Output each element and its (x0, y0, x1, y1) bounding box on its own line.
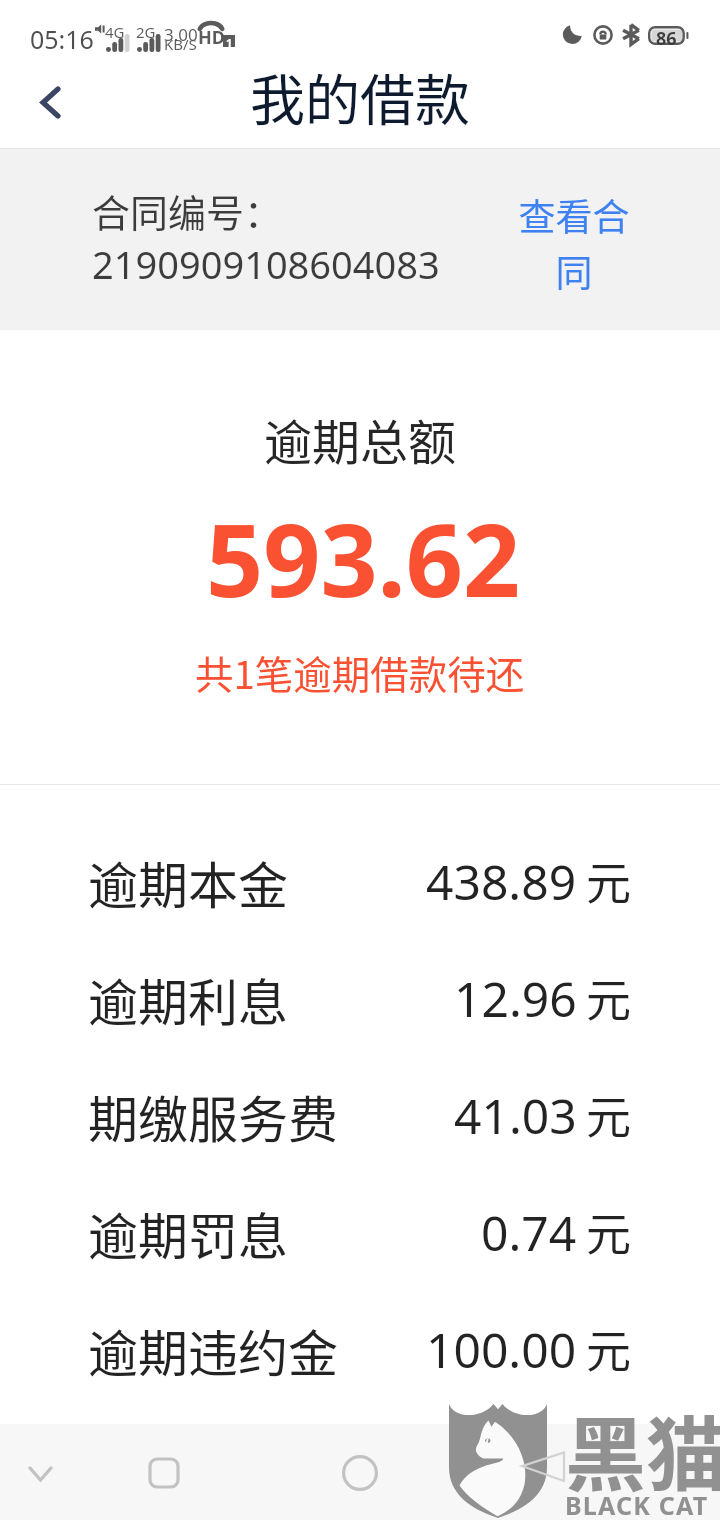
staticText: 2G (136, 22, 156, 42)
staticText: 593.62 (206, 490, 521, 626)
button[interactable]: Recent apps (104, 1424, 224, 1520)
staticText: 逾期本金 (88, 846, 288, 918)
staticText: BLACK CAT (565, 1488, 709, 1520)
staticText: 3.00 (164, 23, 198, 46)
staticText: 逾期罚息 (88, 1197, 288, 1269)
staticText: 05:16 (30, 22, 94, 56)
staticText: 438.89 (426, 849, 577, 914)
staticText: HD (198, 25, 225, 50)
staticText: 合同编号： (92, 183, 283, 238)
button[interactable]: 逾期违约金 (88, 1291, 632, 1408)
other: Bluetooth (622, 24, 640, 45)
staticText: 12.96 (454, 966, 577, 1031)
button[interactable]: 逾期利息 (88, 940, 632, 1057)
other: Do not disturb (562, 25, 585, 44)
staticText: 86 (656, 26, 677, 45)
button[interactable]: Back (15, 67, 85, 137)
staticText: 0.74 (481, 1200, 577, 1265)
other: Rotation locked (592, 25, 614, 45)
staticText: 元 (586, 1199, 632, 1264)
staticText: 逾期总额 (264, 404, 457, 474)
staticText: 元 (586, 848, 632, 913)
staticText: 2190909108604083 (92, 238, 440, 290)
staticText: 4G (105, 22, 125, 42)
button[interactable]: 逾期本金 (88, 823, 632, 940)
staticText: 逾期违约金 (88, 1314, 338, 1386)
staticText: 查看合同 (518, 188, 630, 298)
staticText: 元 (586, 1082, 632, 1147)
button[interactable]: 查看合同 (518, 188, 630, 298)
staticText: 期缴服务费 (88, 1080, 338, 1152)
staticText: 共1笔逾期借款待还 (195, 644, 525, 700)
button[interactable]: Back (0, 1424, 80, 1520)
staticText: 元 (586, 1316, 632, 1381)
staticText: 1 (226, 35, 233, 47)
staticText: KB/S (164, 34, 197, 54)
staticText: 100.00 (426, 1317, 577, 1382)
staticText: 黑猫 (565, 1390, 720, 1507)
staticText: 元 (586, 965, 632, 1030)
staticText: 逾期利息 (88, 963, 288, 1035)
button[interactable]: 逾期罚息 (88, 1174, 632, 1291)
staticText: 41.03 (454, 1083, 577, 1148)
staticText: 我的借款 (250, 56, 471, 136)
button[interactable]: 期缴服务费 (88, 1057, 632, 1174)
button[interactable]: Home (300, 1424, 420, 1520)
